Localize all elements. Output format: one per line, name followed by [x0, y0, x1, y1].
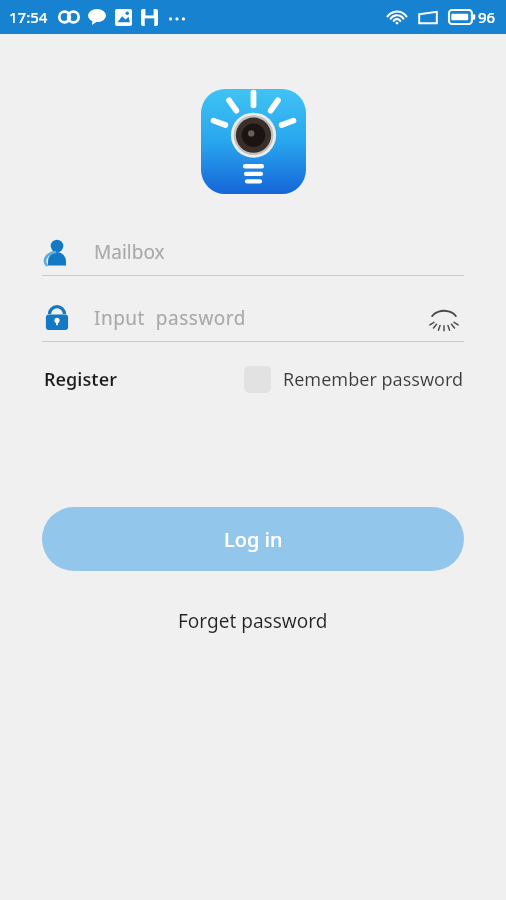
button[interactable]: Show password — [424, 298, 464, 338]
button[interactable]: Register — [42, 361, 119, 398]
button[interactable]: Account — [42, 229, 464, 275]
staticText: 17:54 — [9, 7, 48, 27]
button[interactable]: Password — [42, 295, 464, 341]
button[interactable]: Log in — [42, 507, 464, 571]
staticText: Input password — [94, 305, 246, 331]
button[interactable]: Forget password — [166, 602, 340, 640]
staticText: Mailbox — [94, 239, 165, 265]
button[interactable]: Remember password — [244, 366, 464, 393]
staticText: Remember password — [283, 367, 464, 392]
other: Account — [42, 237, 72, 267]
other: Password — [42, 303, 72, 333]
staticText: 96 — [478, 7, 496, 27]
staticText: Log in — [224, 526, 283, 553]
